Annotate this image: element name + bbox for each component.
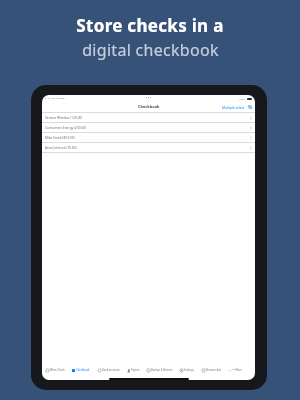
staticText: Mike Smith (853.90): [45, 136, 75, 140]
staticText: Multiple select: [222, 105, 245, 109]
staticText: Consumers Energy (250.00): [45, 126, 86, 130]
button[interactable]: Payees: [127, 368, 140, 372]
button[interactable]: Consumers Energy (250.00): [42, 123, 255, 132]
button[interactable]: Backup & Restore: [147, 368, 173, 372]
staticText: Store checks in a: [76, 14, 224, 37]
staticText: Backup & Restore: [151, 368, 173, 372]
staticText: 100%: [239, 97, 246, 100]
staticText: Bank accounts: [102, 368, 120, 372]
staticText: digital checkbook: [82, 39, 219, 61]
staticText: Verizon Wireless (129.00): [45, 116, 83, 120]
staticText: Payees: [131, 368, 140, 372]
button[interactable]: Bank accounts: [98, 368, 120, 372]
button[interactable]: Write Check: [46, 368, 65, 372]
button[interactable]: Remove Ads: [202, 368, 221, 372]
button[interactable]: Mike Smith (853.90): [42, 133, 255, 142]
staticText: Settings: [184, 368, 194, 372]
staticText: Checkbook: [138, 104, 160, 109]
staticText: Checkbook: [76, 368, 90, 372]
button[interactable]: Verizon Wireless (129.00): [42, 113, 255, 122]
button[interactable]: Checkbook: [72, 368, 90, 372]
staticText: Write Check: [50, 368, 65, 372]
button[interactable]: ••• More: [228, 368, 243, 372]
staticText: Remove Ads: [206, 368, 221, 372]
button[interactable]: Settings: [180, 368, 194, 372]
button[interactable]: Anne Johnson (70.83): [42, 143, 255, 152]
staticText: ••• More: [232, 368, 243, 372]
staticText: Anne Johnson (70.83): [45, 146, 77, 150]
button[interactable]: Multiple select: [222, 105, 252, 109]
staticText: 11:27 AM Thu Feb 1: [45, 97, 67, 100]
